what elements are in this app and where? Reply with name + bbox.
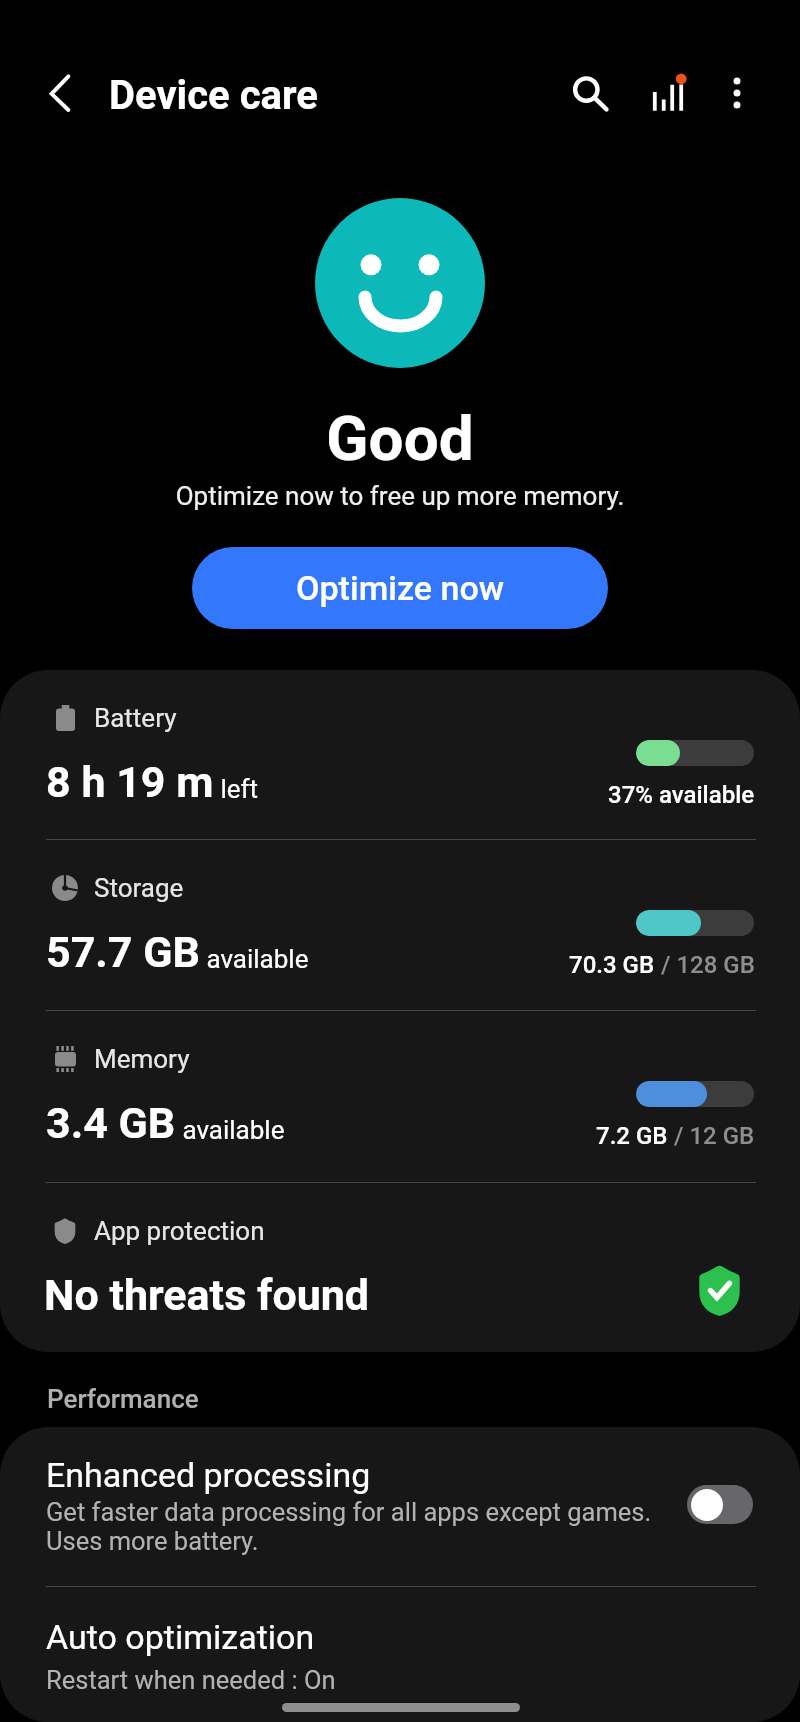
staticText: / 128 GB: [655, 951, 755, 979]
staticText: Optimize now: [296, 568, 505, 608]
staticText: 8 h 19 m: [46, 757, 214, 807]
staticText: Enhanced processing: [46, 1455, 371, 1495]
staticText: Memory: [94, 1044, 190, 1074]
staticText: Performance: [47, 1384, 199, 1414]
button[interactable]: Enhanced processing: [0, 1427, 800, 1586]
staticText: App protection: [94, 1216, 265, 1246]
button[interactable]: Data usage: [636, 58, 704, 126]
staticText: Storage: [94, 873, 184, 903]
staticText: Battery: [94, 703, 177, 733]
staticText: Device care: [109, 72, 318, 119]
staticText: 3.4 GB: [46, 1098, 176, 1148]
staticText: Get faster data processing for all apps …: [46, 1497, 652, 1556]
staticText: Auto optimization: [46, 1617, 315, 1657]
staticText: Restart when needed : On: [46, 1665, 336, 1695]
button[interactable]: Battery: [0, 670, 800, 841]
staticText: Good: [0, 402, 800, 475]
button[interactable]: More options: [703, 58, 771, 126]
button[interactable]: Storage: [0, 840, 800, 1011]
button[interactable]: App protection: [0, 1183, 800, 1352]
staticText: 57.7 GB: [46, 927, 200, 977]
button[interactable]: Enhanced processing switch, off: [687, 1485, 753, 1524]
button[interactable]: Search: [550, 58, 622, 130]
staticText: No threats found: [44, 1270, 370, 1320]
button[interactable]: Optimize now: [192, 547, 608, 629]
staticText: / 12 GB: [668, 1122, 755, 1150]
button[interactable]: Navigate up: [24, 58, 96, 130]
staticText: 7.2 GB: [596, 1122, 668, 1150]
button[interactable]: Memory: [0, 1011, 800, 1182]
staticText: available: [176, 1115, 285, 1145]
staticText: left: [214, 774, 259, 804]
button[interactable]: Auto optimization: [0, 1587, 800, 1722]
staticText: available: [200, 944, 309, 974]
staticText: 37% available: [608, 781, 755, 809]
staticText: 70.3 GB: [569, 951, 655, 979]
staticText: Optimize now to free up more memory.: [0, 481, 800, 511]
